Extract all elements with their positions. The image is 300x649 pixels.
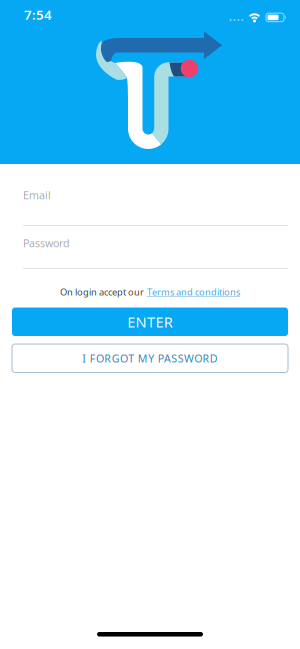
staticText: Password (23, 236, 70, 250)
button[interactable]: ENTER (12, 307, 288, 336)
staticText: 7:54 (24, 6, 52, 23)
staticText: Terms and conditions (147, 286, 240, 298)
staticText: ENTER (127, 312, 173, 331)
button[interactable]: Email (23, 188, 288, 226)
button[interactable]: I FORGOT MY PASSWORD (12, 344, 288, 372)
staticText: I FORGOT MY PASSWORD (82, 351, 218, 365)
staticText: Email (23, 188, 51, 202)
button[interactable]: Terms and conditions (147, 286, 240, 298)
staticText: On login accept our (60, 286, 144, 298)
button[interactable]: Password (23, 236, 288, 269)
